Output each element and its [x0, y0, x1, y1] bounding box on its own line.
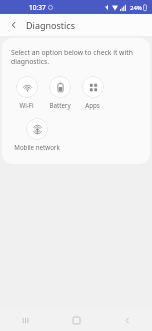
button[interactable]: Apps	[76, 75, 109, 110]
button[interactable]: Recent apps	[14, 309, 36, 331]
staticText: Wi-Fi	[19, 101, 34, 109]
button[interactable]: Home	[65, 309, 87, 331]
button[interactable]: Battery	[43, 75, 76, 110]
button[interactable]: Mobile network	[10, 117, 63, 152]
button[interactable]: Back	[7, 18, 21, 32]
staticText: 10:37	[29, 3, 46, 12]
staticText: Apps	[85, 101, 100, 109]
staticText: Select an option below to check it with …	[11, 48, 141, 66]
staticText: Battery	[49, 101, 71, 109]
button[interactable]: Wi-Fi	[10, 75, 43, 110]
staticText: 24%	[130, 4, 142, 12]
staticText: Mobile network	[14, 143, 60, 151]
button[interactable]: Back	[116, 309, 138, 331]
staticText: Diagnostics	[26, 19, 75, 31]
